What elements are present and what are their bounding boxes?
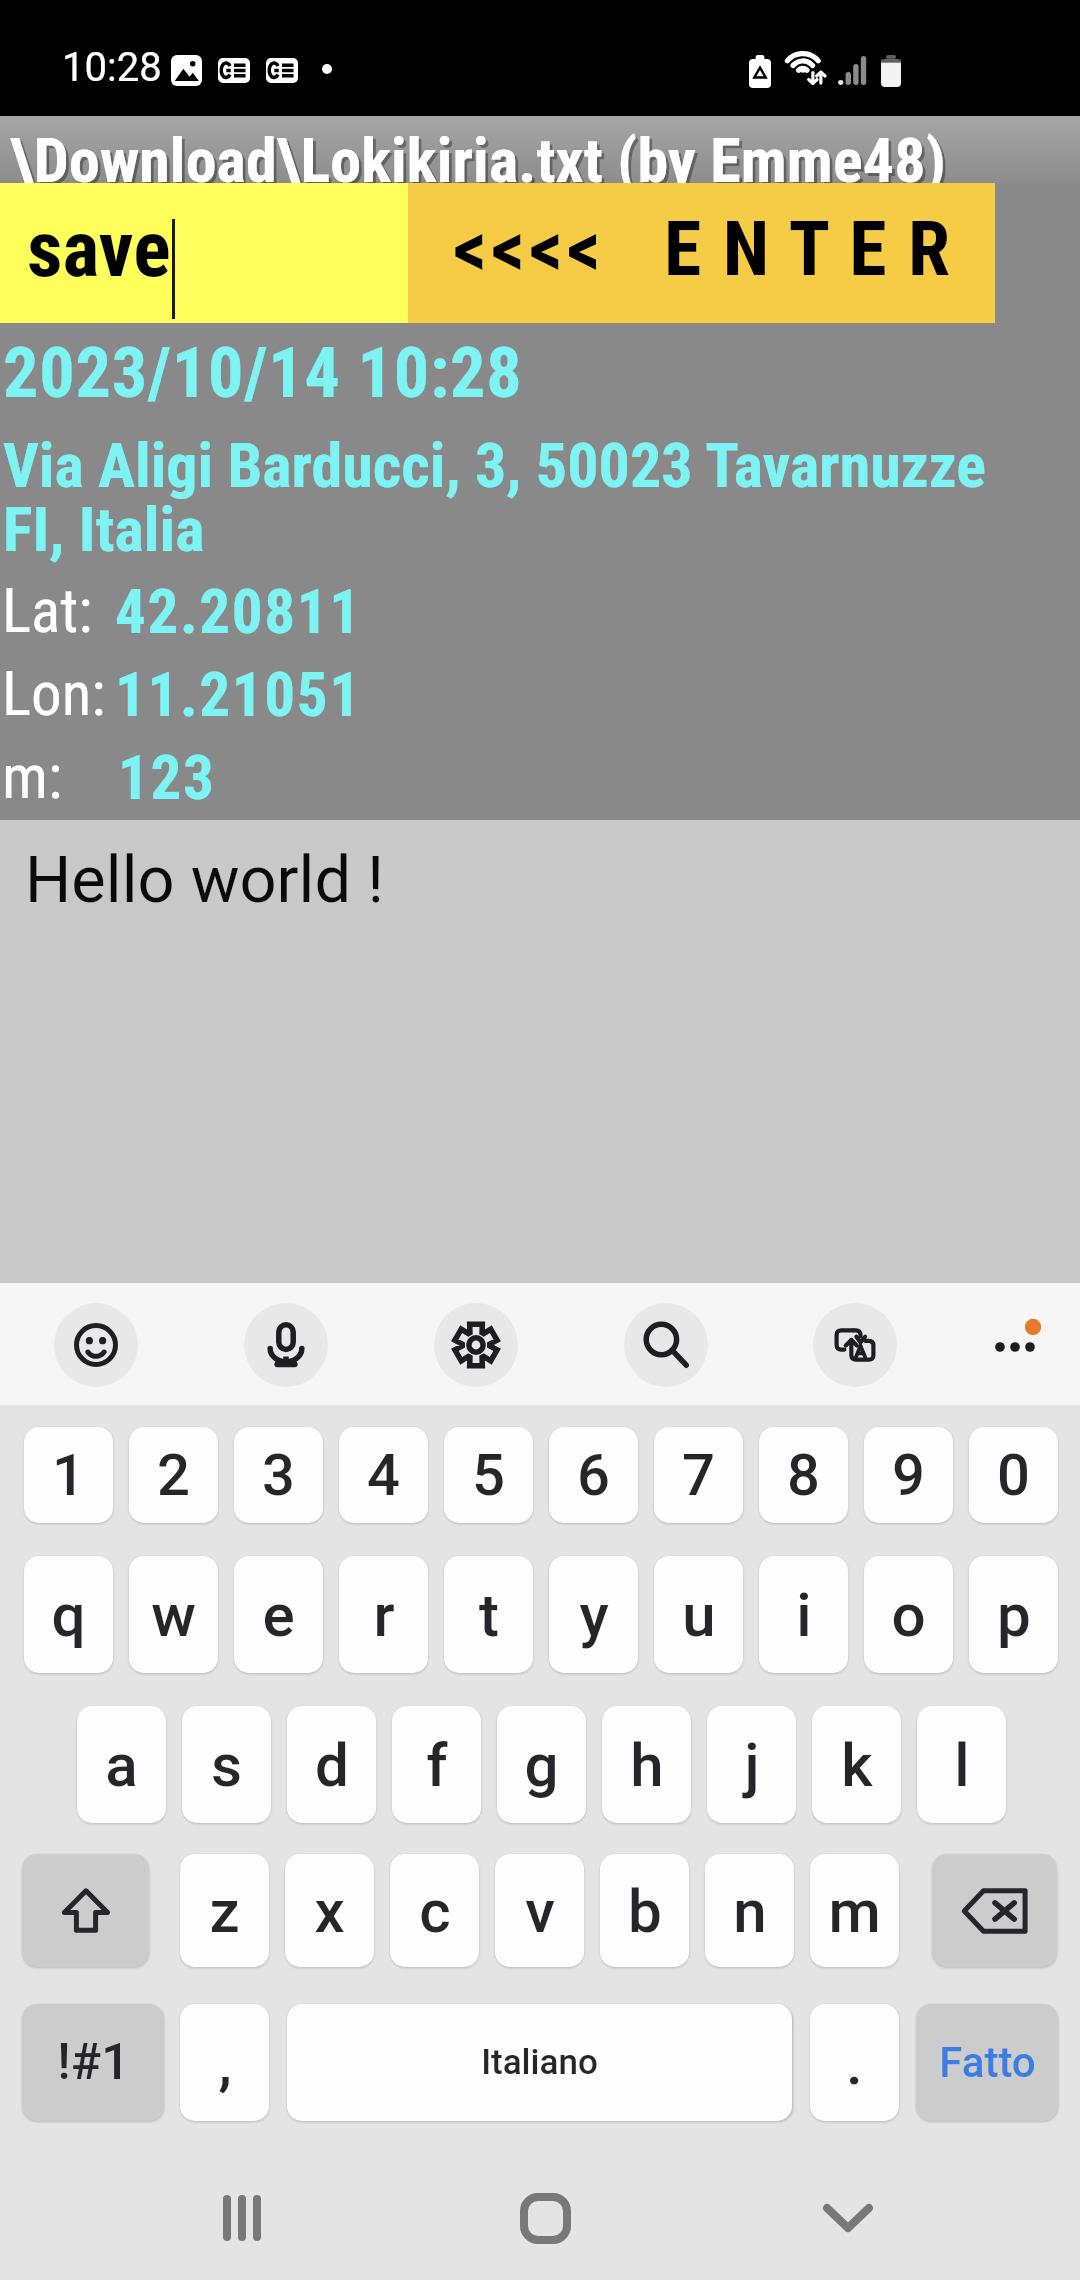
staticText: 2023/10/14 10:28 [3, 332, 523, 414]
staticText: Italiano [481, 2042, 598, 2083]
staticText: !#1 [57, 2033, 130, 2092]
button[interactable]: Home [485, 2158, 605, 2278]
staticText: a [105, 1730, 138, 1800]
button[interactable]: g [497, 1706, 586, 1823]
button[interactable]: q [24, 1556, 113, 1673]
button[interactable]: 3 [234, 1427, 323, 1523]
staticText: 6 [577, 1441, 610, 1509]
button[interactable]: p [969, 1556, 1058, 1673]
button[interactable]: !#1 [22, 2004, 164, 2121]
button[interactable]: 0 [969, 1427, 1058, 1523]
button[interactable]: x [285, 1854, 374, 1967]
button[interactable]: 8 [759, 1427, 848, 1523]
staticText: d [315, 1730, 349, 1800]
staticText: l [954, 1730, 970, 1800]
button[interactable]: Voice input [244, 1303, 328, 1387]
staticText: Via Aligi Barducci, 3, 50023 Tavarnuzze [3, 429, 987, 502]
button[interactable]: r [339, 1556, 428, 1673]
button[interactable]: f [392, 1706, 481, 1823]
button[interactable]: Fatto [916, 2004, 1058, 2121]
staticText: Hello world ! [25, 842, 384, 918]
button[interactable]: 1 [24, 1427, 113, 1523]
button[interactable]: a [77, 1706, 166, 1823]
staticText: j [744, 1730, 760, 1800]
staticText: Lat: [2, 575, 93, 646]
staticText: v [525, 1876, 555, 1946]
button[interactable]: 2 [129, 1427, 218, 1523]
staticText: 7 [682, 1441, 715, 1509]
staticText: r [373, 1580, 395, 1650]
staticText: 8 [787, 1441, 820, 1509]
staticText: h [630, 1730, 664, 1800]
button[interactable]: Hello world ! [0, 820, 1080, 1283]
staticText: b [628, 1876, 662, 1946]
staticText: 11.21051 [115, 659, 362, 730]
button[interactable]: e [234, 1556, 323, 1673]
button[interactable]: y [549, 1556, 638, 1673]
staticText: 10:28 [62, 44, 162, 91]
staticText: <<<< [453, 204, 605, 293]
staticText: s [211, 1730, 242, 1800]
button[interactable]: Shift [22, 1854, 149, 1967]
button[interactable]: 9 [864, 1427, 953, 1523]
button[interactable]: b [600, 1854, 689, 1967]
button[interactable]: l [917, 1706, 1006, 1823]
staticText: g [524, 1730, 559, 1800]
button[interactable]: o [864, 1556, 953, 1673]
staticText: 3 [262, 1441, 295, 1509]
button[interactable]: c [390, 1854, 479, 1967]
staticText: o [891, 1580, 926, 1650]
staticText: n [733, 1876, 767, 1946]
button[interactable]: d [287, 1706, 376, 1823]
button[interactable]: Settings [434, 1303, 518, 1387]
button[interactable]: k [812, 1706, 901, 1823]
button[interactable]: , [180, 2004, 269, 2121]
staticText: 1 [52, 1441, 85, 1509]
button[interactable]: Hide keyboard [788, 2158, 908, 2278]
button[interactable]: 5 [444, 1427, 533, 1523]
staticText: y [579, 1580, 609, 1650]
button[interactable]: Translate [813, 1303, 897, 1387]
staticText: 0 [997, 1441, 1030, 1509]
staticText: save [27, 204, 171, 295]
staticText: Lon: [2, 658, 106, 729]
staticText: 9 [892, 1441, 925, 1509]
staticText: p [997, 1580, 1031, 1650]
staticText: w [151, 1580, 196, 1650]
staticText: k [841, 1730, 873, 1800]
staticText: q [51, 1580, 86, 1650]
button[interactable]: 4 [339, 1427, 428, 1523]
staticText: x [314, 1876, 345, 1946]
button[interactable]: u [654, 1556, 743, 1673]
staticText: t [479, 1580, 499, 1650]
staticText: E N T E R [664, 204, 953, 293]
staticText: FI, Italia [3, 493, 205, 566]
button[interactable]: m [810, 1854, 899, 1967]
staticText: z [209, 1876, 240, 1946]
button[interactable]: More options [958, 1303, 1050, 1395]
staticText: \Download\Lokikiria.txt (by Emme48) [10, 124, 946, 191]
button[interactable]: t [444, 1556, 533, 1673]
button[interactable]: j [707, 1706, 796, 1823]
staticText: i [796, 1580, 812, 1650]
button[interactable]: <<<< [408, 183, 995, 323]
button[interactable]: Recents [182, 2158, 302, 2278]
button[interactable]: Search [624, 1303, 708, 1387]
staticText: 4 [367, 1441, 400, 1509]
button[interactable]: v [495, 1854, 584, 1967]
button[interactable]: 6 [549, 1427, 638, 1523]
button[interactable]: z [180, 1854, 269, 1967]
button[interactable]: . [810, 2004, 899, 2121]
button[interactable]: 7 [654, 1427, 743, 1523]
button[interactable]: s [182, 1706, 271, 1823]
staticText: , [218, 2028, 232, 2098]
button[interactable]: Emoji [54, 1303, 138, 1387]
button[interactable]: Italiano [287, 2004, 792, 2121]
button[interactable]: h [602, 1706, 691, 1823]
button[interactable]: Backspace [932, 1854, 1057, 1967]
button[interactable]: w [129, 1556, 218, 1673]
staticText: u [682, 1580, 716, 1650]
button[interactable]: n [705, 1854, 794, 1967]
button[interactable]: i [759, 1556, 848, 1673]
button[interactable]: save [0, 183, 408, 323]
